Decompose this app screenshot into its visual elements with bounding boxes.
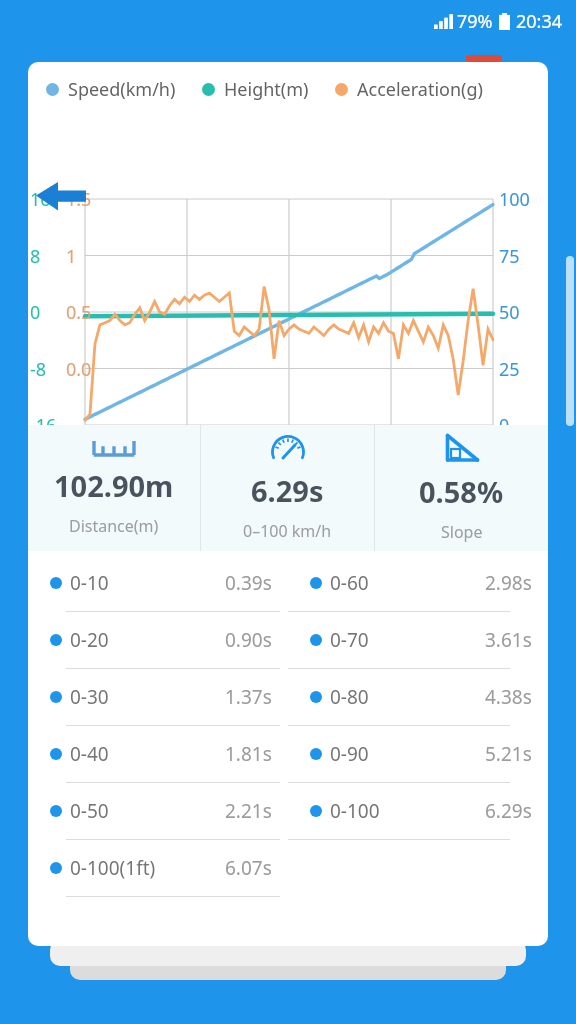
staticText: 0.90s bbox=[225, 627, 272, 653]
staticText: Height(m) bbox=[224, 77, 309, 102]
staticText: 6.29s bbox=[251, 471, 324, 510]
staticText: 2.98s bbox=[485, 570, 532, 596]
button[interactable]: Distance bbox=[28, 425, 200, 551]
button[interactable]: Acceleration time bbox=[201, 425, 374, 551]
staticText: 0-50 bbox=[70, 798, 109, 824]
staticText: 3.61s bbox=[485, 627, 532, 653]
staticText: 0–100 km/h bbox=[243, 520, 332, 542]
other: Distance bbox=[92, 439, 136, 457]
staticText: 0 bbox=[499, 413, 510, 438]
staticText: 1.81s bbox=[225, 741, 272, 767]
staticText: 6.29s bbox=[485, 798, 532, 824]
staticText: 0-90 bbox=[330, 741, 369, 767]
staticText: 100 bbox=[499, 187, 530, 212]
staticText: 5.21s bbox=[485, 741, 532, 767]
staticText: Speed(km/h) bbox=[68, 77, 176, 102]
button[interactable]: Height(m) bbox=[202, 77, 309, 102]
button[interactable]: 0-40 bbox=[28, 726, 548, 782]
staticText: 16 bbox=[30, 187, 51, 212]
button[interactable]: 0-20 bbox=[28, 612, 548, 668]
staticText: 2.21s bbox=[225, 798, 272, 824]
staticText: 0-10 bbox=[70, 570, 109, 596]
staticText: 1.37s bbox=[225, 684, 272, 710]
staticText: 25 bbox=[499, 357, 520, 382]
staticText: 0-80 bbox=[330, 684, 369, 710]
staticText: 0.39s bbox=[225, 570, 272, 596]
staticText: Acceleration(g) bbox=[357, 77, 483, 102]
button[interactable]: 0-100(1ft) bbox=[28, 840, 548, 896]
staticText: 0-70 bbox=[330, 627, 369, 653]
staticText: Distance(m) bbox=[69, 515, 159, 537]
staticText: 1 bbox=[66, 244, 77, 269]
staticText: 4.38s bbox=[485, 684, 532, 710]
button[interactable]: Slope bbox=[375, 425, 548, 551]
staticText: Slope bbox=[441, 521, 483, 543]
other: Slope bbox=[444, 433, 480, 463]
staticText: 75 bbox=[499, 244, 520, 269]
button[interactable]: 0-50 bbox=[28, 783, 548, 839]
button[interactable]: Speed(km/h) bbox=[46, 77, 176, 102]
staticText: 0-100(1ft) bbox=[70, 855, 156, 881]
staticText: -8 bbox=[30, 357, 47, 382]
staticText: 50 bbox=[499, 300, 520, 325]
button[interactable]: 0-10 bbox=[28, 555, 548, 611]
staticText: -16 bbox=[30, 413, 57, 438]
staticText: 0.58% bbox=[419, 472, 504, 511]
staticText: 0.0 bbox=[66, 357, 92, 382]
staticText: 0-40 bbox=[70, 741, 109, 767]
staticText: 1.5 bbox=[66, 187, 92, 212]
other: Acceleration time bbox=[270, 434, 306, 462]
staticText: 0-60 bbox=[330, 570, 369, 596]
staticText: 20:34 bbox=[516, 9, 563, 34]
staticText: 0.5 bbox=[66, 300, 92, 325]
staticText: 0-30 bbox=[70, 684, 109, 710]
staticText: 79% bbox=[457, 9, 493, 34]
staticText: 102.90m bbox=[54, 466, 174, 505]
staticText: 6.07s bbox=[225, 855, 272, 881]
button[interactable]: Acceleration(g) bbox=[335, 77, 483, 102]
button[interactable]: 0-30 bbox=[28, 669, 548, 725]
staticText: 0-20 bbox=[70, 627, 109, 653]
staticText: 8 bbox=[30, 244, 41, 269]
staticText: 0-100 bbox=[330, 798, 380, 824]
staticText: 0 bbox=[30, 300, 41, 325]
